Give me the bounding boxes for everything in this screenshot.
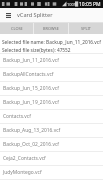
staticText: Selected file size(bytes): 47552 bbox=[2, 47, 71, 53]
staticText: Backup_Jun_15_2016.vcf bbox=[3, 85, 59, 92]
staticText: Backup_Aug_13_2016.vcf bbox=[3, 127, 61, 134]
button[interactable]: CLOSE bbox=[0, 23, 33, 34]
button[interactable]: Backup_Aug_13_2016.vcf bbox=[0, 124, 103, 137]
button[interactable]: BROWSE bbox=[34, 23, 68, 34]
staticText: Contacts.vcf bbox=[3, 113, 31, 120]
button[interactable]: JudyMontego.vcf bbox=[0, 166, 103, 179]
staticText: Backup_Jun_11_2016.vcf bbox=[3, 57, 59, 64]
button[interactable]: Contacts.vcf bbox=[0, 110, 103, 123]
button[interactable]: Backup_Jun_11_2016.vcf bbox=[0, 54, 103, 67]
button[interactable]: Backup_Oct_02_2016.vcf bbox=[0, 138, 103, 151]
staticText: Selected file name: Backup_Jun_11_2016.v… bbox=[2, 39, 101, 45]
button[interactable]: BackupAllContacts.vcf bbox=[0, 68, 103, 81]
button[interactable]: SPLIT bbox=[69, 23, 103, 34]
staticText: JudyMontego.vcf bbox=[3, 169, 42, 176]
staticText: BackupAllContacts.vcf bbox=[3, 71, 54, 78]
staticText: BROWSE bbox=[43, 26, 59, 31]
button[interactable]: Backup_Jun_15_2016.vcf bbox=[0, 82, 103, 95]
staticText: 100% bbox=[67, 2, 78, 7]
staticText: 10:05 PM bbox=[79, 1, 101, 8]
staticText: SPLIT bbox=[81, 26, 92, 31]
button[interactable]: Open navigation menu bbox=[0, 8, 17, 22]
staticText: vCard Splitter bbox=[17, 11, 53, 19]
button[interactable]: Ceja2_Contacts.vcf bbox=[0, 152, 103, 165]
staticText: Ceja2_Contacts.vcf bbox=[3, 155, 46, 162]
button[interactable]: Backup_Jun_19_2016.vcf bbox=[0, 96, 103, 109]
staticText: CLOSE bbox=[11, 26, 23, 31]
staticText: Backup_Oct_02_2016.vcf bbox=[3, 141, 59, 148]
staticText: Backup_Jun_19_2016.vcf bbox=[3, 99, 59, 106]
